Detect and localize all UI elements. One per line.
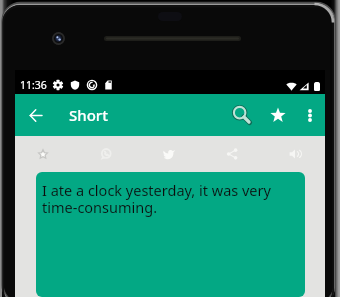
button[interactable]: I ate a clock yesterday, it was very tim… [36, 172, 305, 297]
staticText: Short [69, 105, 108, 125]
button[interactable]: Search [227, 98, 261, 132]
button[interactable]: More options [295, 100, 325, 130]
staticText: I ate a clock yesterday, it was very tim… [42, 180, 293, 217]
button[interactable]: Share on Twitter [144, 136, 194, 172]
button[interactable]: Favorite [263, 99, 295, 131]
staticText: 11:36 [20, 78, 47, 92]
button[interactable]: Back [17, 97, 53, 133]
button[interactable]: Favorite [18, 136, 68, 172]
